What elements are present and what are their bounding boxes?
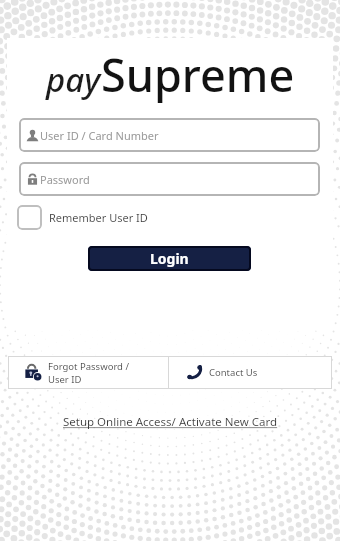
staticText: pay (46, 57, 101, 102)
staticText: Forgot Password / (48, 360, 129, 373)
button[interactable]: Password (19, 162, 320, 196)
other: Forgot Password or User ID (24, 364, 41, 381)
button[interactable]: Contact Us (187, 356, 332, 389)
button[interactable]: Login (88, 246, 251, 271)
button[interactable]: User ID / Card Number (19, 118, 320, 152)
staticText: Supreme (101, 44, 295, 105)
staticText: Remember User ID (49, 210, 148, 225)
staticText: Password (40, 172, 90, 187)
button[interactable]: Forgot Password or User ID (24, 356, 168, 389)
button[interactable]: Remember User ID (17, 203, 148, 231)
staticText: User ID / Card Number (40, 128, 159, 143)
other: Contact Us (187, 365, 202, 380)
staticText: Contact Us (209, 366, 258, 379)
staticText: Login (150, 249, 189, 268)
staticText: User ID (48, 373, 82, 386)
button[interactable]: Setup Online Access/ Activate New Card (63, 414, 278, 430)
